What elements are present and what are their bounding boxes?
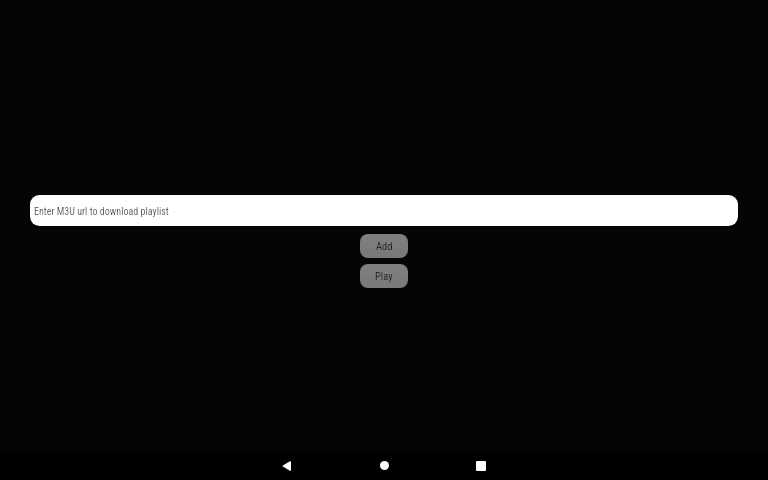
button[interactable]: Play <box>360 264 408 288</box>
button[interactable]: Enter M3U url to download playlist <box>30 195 738 226</box>
button[interactable]: Recent apps <box>457 451 505 480</box>
staticText: Enter M3U url to download playlist <box>34 206 169 218</box>
button[interactable]: Home <box>360 451 408 480</box>
staticText: Add <box>376 240 393 252</box>
button[interactable]: Back <box>262 451 310 480</box>
button[interactable]: Add <box>360 234 408 258</box>
staticText: Play <box>375 270 393 282</box>
